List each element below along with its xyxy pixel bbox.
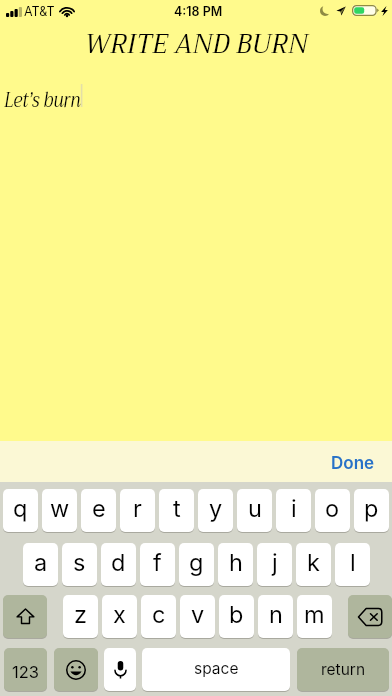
staticText: f: [153, 548, 162, 576]
button[interactable]: space: [142, 648, 290, 691]
button[interactable]: Done: [311, 444, 392, 480]
staticText: s: [73, 548, 86, 576]
staticText: e: [92, 494, 106, 522]
button[interactable]: c: [141, 595, 176, 638]
staticText: v: [191, 600, 205, 628]
staticText: b: [229, 600, 244, 628]
staticText: Let’s burn: [4, 82, 81, 118]
button[interactable]: s: [62, 543, 97, 586]
button[interactable]: j: [257, 543, 292, 586]
staticText: q: [13, 494, 28, 522]
button[interactable]: o: [315, 489, 350, 532]
staticText: o: [325, 494, 340, 522]
button[interactable]: g: [179, 543, 214, 586]
button[interactable]: h: [218, 543, 253, 586]
button[interactable]: m: [297, 595, 332, 638]
button[interactable]: l: [335, 543, 370, 586]
button[interactable]: u: [237, 489, 272, 532]
button[interactable]: a: [23, 543, 58, 586]
staticText: 123: [12, 662, 39, 682]
staticText: w: [50, 494, 70, 522]
button[interactable]: r: [120, 489, 155, 532]
staticText: r: [133, 494, 142, 522]
staticText: u: [248, 494, 262, 522]
button[interactable]: t: [159, 489, 194, 532]
staticText: space: [194, 659, 239, 678]
button[interactable]: e: [81, 489, 116, 532]
staticText: l: [350, 548, 356, 576]
staticText: 4:18 PM: [174, 4, 223, 19]
staticText: a: [34, 548, 48, 576]
button[interactable]: return: [297, 648, 389, 691]
button[interactable]: n: [258, 595, 293, 638]
button[interactable]: w: [42, 489, 77, 532]
staticText: n: [269, 600, 283, 628]
button[interactable]: d: [101, 543, 136, 586]
button[interactable]: f: [140, 543, 175, 586]
button[interactable]: k: [296, 543, 331, 586]
staticText: i: [291, 494, 297, 522]
button[interactable]: Shift: [3, 595, 47, 638]
staticText: c: [152, 600, 166, 628]
button[interactable]: v: [180, 595, 215, 638]
staticText: z: [74, 600, 87, 628]
staticText: x: [113, 600, 126, 628]
staticText: WRITE AND BURN: [0, 21, 392, 67]
staticText: AT&T: [24, 4, 55, 19]
button[interactable]: q: [3, 489, 38, 532]
staticText: Done: [331, 453, 375, 474]
staticText: k: [307, 548, 320, 576]
button[interactable]: z: [63, 595, 98, 638]
staticText: return: [321, 660, 366, 679]
button[interactable]: 123: [4, 648, 47, 691]
button[interactable]: y: [198, 489, 233, 532]
button[interactable]: Dictation: [104, 648, 136, 691]
button[interactable]: Emoji: [54, 648, 98, 691]
button[interactable]: x: [102, 595, 137, 638]
button[interactable]: Delete: [348, 595, 392, 638]
staticText: d: [111, 548, 126, 576]
staticText: t: [173, 494, 181, 522]
button[interactable]: i: [276, 489, 311, 532]
button[interactable]: p: [354, 489, 389, 532]
staticText: p: [364, 494, 379, 522]
staticText: j: [272, 548, 278, 576]
staticText: g: [189, 548, 204, 576]
staticText: y: [209, 494, 223, 522]
staticText: m: [304, 600, 325, 628]
button[interactable]: b: [219, 595, 254, 638]
staticText: h: [229, 548, 243, 576]
